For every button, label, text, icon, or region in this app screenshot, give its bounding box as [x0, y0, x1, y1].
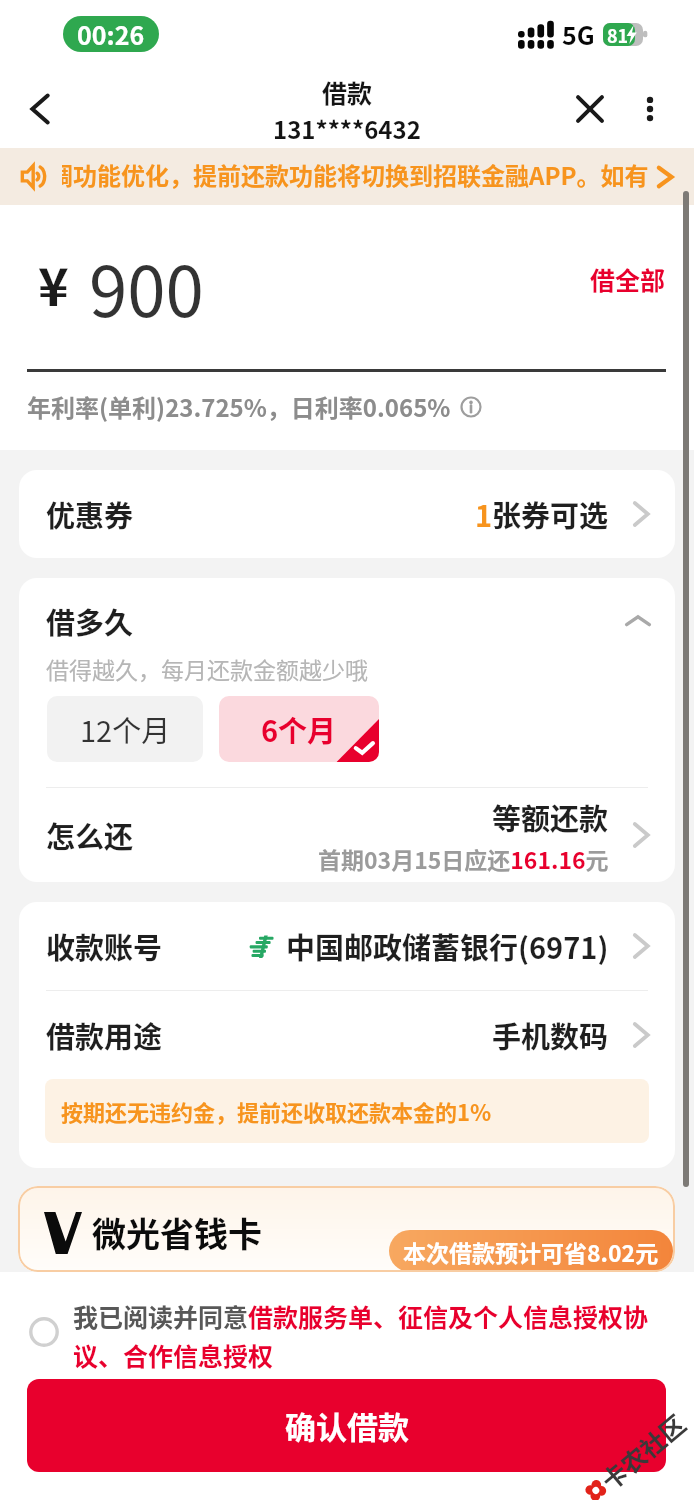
staticText: 借得越久，每月还款金额越少哦 [46, 652, 368, 685]
button[interactable]: 借款用途 [19, 991, 675, 1079]
staticText: 6个月 [261, 708, 337, 750]
button[interactable]: 6个月 [219, 696, 379, 762]
staticText: ¥ [38, 246, 69, 321]
staticText: 按期还无违约金，提前还收取还款本金的1% [61, 1095, 492, 1127]
staticText: 借多久 [46, 600, 134, 642]
staticText: 借款用途 [46, 1014, 163, 1056]
staticText: 卡农社区 [593, 1405, 693, 1497]
button[interactable]: Agree to terms [29, 1298, 666, 1373]
button[interactable]: 调功能优化，提前还款功能将切换到招联金融APP。如有疑问请 [62, 157, 670, 197]
staticText: 等额还款 [492, 796, 609, 838]
staticText: 微光省钱卡 [92, 1208, 262, 1257]
staticText: 借款 [322, 74, 373, 110]
button[interactable]: 12个月 [47, 696, 203, 762]
staticText: 00:26 [77, 16, 145, 52]
staticText: 怎么还 [46, 814, 134, 856]
button[interactable]: 收款账号 [19, 902, 675, 990]
button[interactable]: Back [17, 85, 65, 133]
staticText: 中国邮政储蓄银行(6971) [286, 925, 609, 967]
staticText: 借全部 [590, 261, 666, 297]
staticText: 900 [89, 237, 204, 321]
staticText: 81 [607, 22, 629, 45]
button[interactable]: Collapse [623, 606, 653, 636]
staticText: 首期03月15日应还161.16元 [318, 842, 609, 875]
staticText: 5G [562, 16, 595, 52]
staticText: 手机数码 [492, 1014, 609, 1056]
staticText: 收款账号 [46, 925, 163, 967]
button[interactable]: 借全部 [584, 255, 672, 303]
staticText: 本次借款预计可省8.02元 [403, 1235, 659, 1268]
button[interactable]: 优惠券 [19, 470, 675, 558]
staticText: 确认借款 [285, 1403, 409, 1448]
staticText: 调功能优化，提前还款功能将切换到招联金融APP。如有疑问请 [62, 157, 657, 197]
staticText: 优惠券 [46, 493, 134, 535]
other: Agree to terms [29, 1317, 59, 1347]
staticText: 年利率(单利)23.725%，日利率0.065% [27, 389, 451, 424]
staticText: 1张券可选 [475, 493, 609, 535]
staticText: 12个月 [80, 708, 171, 750]
staticText: 131****6432 [273, 111, 421, 146]
button[interactable]: 怎么还 [19, 788, 675, 882]
staticText: 我已阅读并同意借款服务单、征信及个人信息授权协议、合作信息授权 [73, 1298, 666, 1373]
button[interactable]: Close [564, 83, 616, 135]
button[interactable]: 确认借款 [27, 1379, 666, 1472]
button[interactable]: More options [626, 85, 674, 133]
